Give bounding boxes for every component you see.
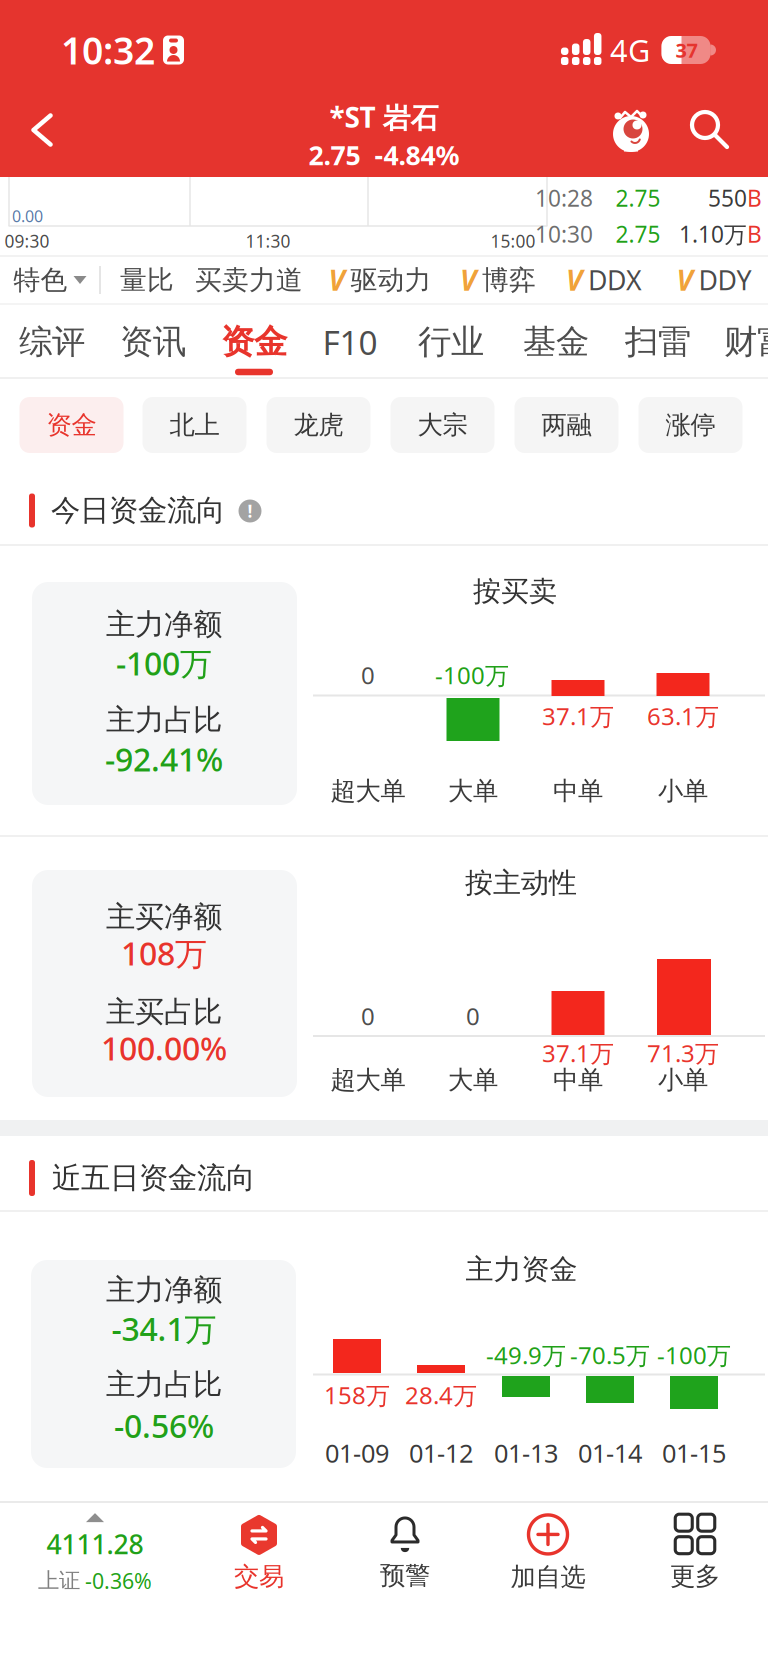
staticText: 主买净额 (106, 899, 222, 935)
button[interactable]: V (566, 261, 642, 299)
staticText: 中单 (553, 775, 603, 806)
button[interactable]: 买卖力道 (195, 264, 303, 296)
staticText: 综评 (19, 321, 85, 362)
staticText: 63.1万 (647, 700, 719, 732)
button[interactable]: 交易 (199, 1507, 319, 1599)
staticText: 博弈 (482, 264, 536, 296)
staticText: B (747, 219, 762, 249)
button[interactable]: 资金 (19, 397, 123, 453)
staticText: 09:30 (4, 229, 49, 252)
button[interactable]: 加自选 (478, 1507, 618, 1599)
staticText: 0.00 (12, 205, 43, 227)
staticText: 37.1万 (542, 700, 614, 732)
staticText: 主买占比 (106, 994, 222, 1030)
staticText: -70.5万 (570, 1339, 650, 1371)
staticText: 基金 (523, 321, 589, 362)
staticText: 交易 (234, 1561, 284, 1592)
button[interactable]: 综评 (19, 321, 85, 362)
staticText: *ST 岩石 (329, 98, 438, 136)
staticText: 按主动性 (465, 866, 577, 900)
button[interactable]: 扫雷 (625, 321, 691, 362)
staticText: 01-14 (578, 1436, 642, 1470)
staticText: -100万 (657, 1339, 731, 1371)
button[interactable]: V (460, 261, 536, 299)
staticText: -0.36% (85, 1566, 152, 1595)
button[interactable]: 资金 (221, 321, 287, 362)
staticText: 0 (466, 1000, 480, 1032)
button[interactable]: Stock Diagnosis (611, 107, 651, 157)
button[interactable]: 基金 (523, 321, 589, 362)
staticText: V (328, 261, 345, 299)
button[interactable]: 特色 (13, 264, 86, 296)
staticText: B (747, 183, 762, 213)
button[interactable]: 北上 (142, 397, 246, 453)
staticText: 10:32 (61, 25, 155, 75)
staticText: 01-13 (494, 1436, 558, 1470)
staticText: 2.75 (615, 183, 660, 213)
staticText: 71.3万 (647, 1037, 719, 1069)
staticText: 超大单 (330, 1064, 405, 1095)
staticText: 驱动力 (350, 264, 431, 296)
staticText: 108万 (121, 932, 207, 974)
staticText: 37 (675, 37, 697, 63)
staticText: 主力占比 (106, 1366, 222, 1402)
staticText: 资金 (221, 321, 287, 362)
staticText: 加自选 (510, 1561, 585, 1592)
staticText: 龙虎 (293, 409, 343, 440)
staticText: V (460, 261, 477, 299)
staticText: 0 (361, 659, 375, 691)
button[interactable]: 资讯 (120, 321, 186, 362)
button[interactable]: V (328, 261, 431, 299)
button[interactable]: F10 (322, 320, 377, 364)
staticText: 买卖力道 (195, 264, 303, 296)
staticText: 主力资金 (465, 1252, 577, 1287)
staticText: ! (247, 499, 252, 522)
staticText: 15:00 (490, 229, 535, 252)
button[interactable]: 财富 (724, 321, 768, 362)
staticText: 财富 (724, 321, 768, 362)
staticText: -100万 (116, 642, 212, 684)
button[interactable]: 4111.28 (10, 1511, 180, 1597)
staticText: 4G (610, 30, 650, 70)
staticText: 550 (708, 183, 747, 213)
staticText: DDX (588, 262, 642, 298)
staticText: 按买卖 (473, 574, 557, 609)
staticText: 特色 (13, 264, 67, 296)
button[interactable]: Back (20, 106, 64, 154)
staticText: 1.10万 (679, 219, 747, 249)
staticText: -100万 (435, 659, 509, 691)
staticText: 预警 (380, 1560, 430, 1591)
staticText: 2.75 -4.84% (308, 137, 459, 173)
button[interactable]: 龙虎 (266, 397, 370, 453)
staticText: 大单 (448, 1064, 498, 1095)
staticText: F10 (322, 320, 377, 364)
button[interactable]: Search (689, 109, 731, 151)
staticText: -0.56% (114, 1404, 214, 1447)
button[interactable]: 大宗 (390, 397, 494, 453)
staticText: 更多 (670, 1561, 720, 1592)
staticText: 158万 (324, 1379, 390, 1411)
button[interactable]: V (676, 261, 751, 299)
staticText: 小单 (658, 775, 708, 806)
button[interactable]: 涨停 (638, 397, 742, 453)
staticText: 2.75 (615, 219, 660, 249)
staticText: -49.9万 (486, 1339, 566, 1371)
button[interactable]: 两融 (514, 397, 618, 453)
staticText: 量比 (120, 264, 174, 296)
button[interactable]: 行业 (418, 321, 484, 362)
staticText: 中单 (553, 1064, 603, 1095)
staticText: 两融 (541, 409, 591, 440)
button[interactable]: Info (238, 499, 261, 522)
button[interactable]: 预警 (345, 1507, 465, 1599)
staticText: 主力净额 (106, 606, 222, 642)
staticText: 扫雷 (625, 321, 691, 362)
staticText: 37.1万 (542, 1037, 614, 1069)
staticText: 今日资金流向 (51, 492, 225, 528)
staticText: 0 (361, 1000, 375, 1032)
button[interactable]: 量比 (120, 264, 174, 296)
staticText: 近五日资金流向 (52, 1160, 255, 1196)
button[interactable]: 更多 (635, 1507, 755, 1599)
staticText: 100.00% (101, 1027, 227, 1069)
staticText: 01-15 (662, 1436, 726, 1470)
staticText: 资金 (46, 409, 96, 440)
